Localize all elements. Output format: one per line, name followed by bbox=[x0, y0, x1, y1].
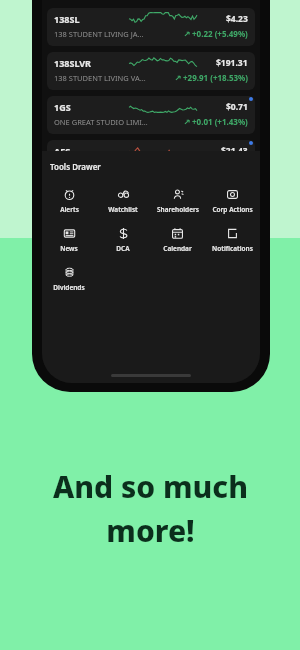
staticText: +0.01 (+1.43%) bbox=[192, 116, 248, 127]
button[interactable]: 1GS bbox=[47, 96, 255, 134]
button[interactable]: 138SL bbox=[47, 8, 255, 46]
staticText: AFS bbox=[54, 145, 71, 157]
staticText: +29.91 (+18.53%) bbox=[183, 72, 248, 83]
button[interactable]: AMG bbox=[47, 184, 255, 224]
staticText: Tools Drawer bbox=[50, 161, 101, 172]
button[interactable]: Notifications bbox=[211, 225, 254, 255]
staticText: 138 STUDENT LIVING JA… bbox=[54, 29, 144, 39]
staticText: AMG bbox=[54, 189, 76, 201]
staticText: DCA bbox=[116, 244, 130, 253]
staticText: 1GS bbox=[54, 101, 71, 113]
button[interactable]: Shareholders bbox=[156, 186, 200, 216]
staticText: more! bbox=[106, 510, 195, 551]
button[interactable]: 138SLVR bbox=[47, 52, 255, 90]
staticText: News bbox=[60, 244, 78, 253]
staticText: $21.43 bbox=[221, 145, 248, 157]
staticText: $2.76 bbox=[226, 189, 248, 201]
staticText: And so much bbox=[53, 466, 248, 507]
staticText: +0.22 (+5.49%) bbox=[192, 28, 248, 39]
button[interactable]: Corp Actions bbox=[211, 186, 254, 216]
staticText: Alerts bbox=[60, 205, 79, 214]
staticText: Corp Actions bbox=[212, 205, 253, 214]
staticText: $4.23 bbox=[226, 13, 248, 25]
staticText: ACCESS FINANCIAL SERV… bbox=[54, 161, 146, 171]
button[interactable]: AFS bbox=[47, 140, 255, 178]
button[interactable]: News bbox=[59, 225, 79, 255]
staticText: Calendar bbox=[163, 244, 192, 253]
staticText: 138 STUDENT LIVING VA… bbox=[54, 73, 146, 83]
button[interactable]: Alerts bbox=[59, 186, 80, 216]
staticText: 138SLVR bbox=[54, 57, 92, 69]
button[interactable]: DCA bbox=[115, 225, 131, 255]
staticText: Notifications bbox=[212, 244, 253, 253]
staticText: Dividends bbox=[53, 283, 85, 292]
button[interactable]: Dividends bbox=[52, 264, 86, 294]
button[interactable]: Calendar bbox=[162, 225, 193, 255]
staticText: 138SL bbox=[54, 13, 80, 25]
button[interactable]: Watchlist bbox=[107, 186, 139, 216]
staticText: Shareholders bbox=[157, 205, 199, 214]
staticText: Watchlist bbox=[108, 205, 138, 214]
staticText: ONE GREAT STUDIO LIMI… bbox=[54, 117, 148, 127]
staticText: $0.71 bbox=[226, 101, 248, 113]
staticText: $191.31 bbox=[216, 57, 248, 69]
